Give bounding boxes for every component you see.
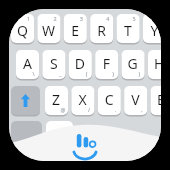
- button[interactable]: TouchPal Keyboard: [0, 0, 170, 170]
